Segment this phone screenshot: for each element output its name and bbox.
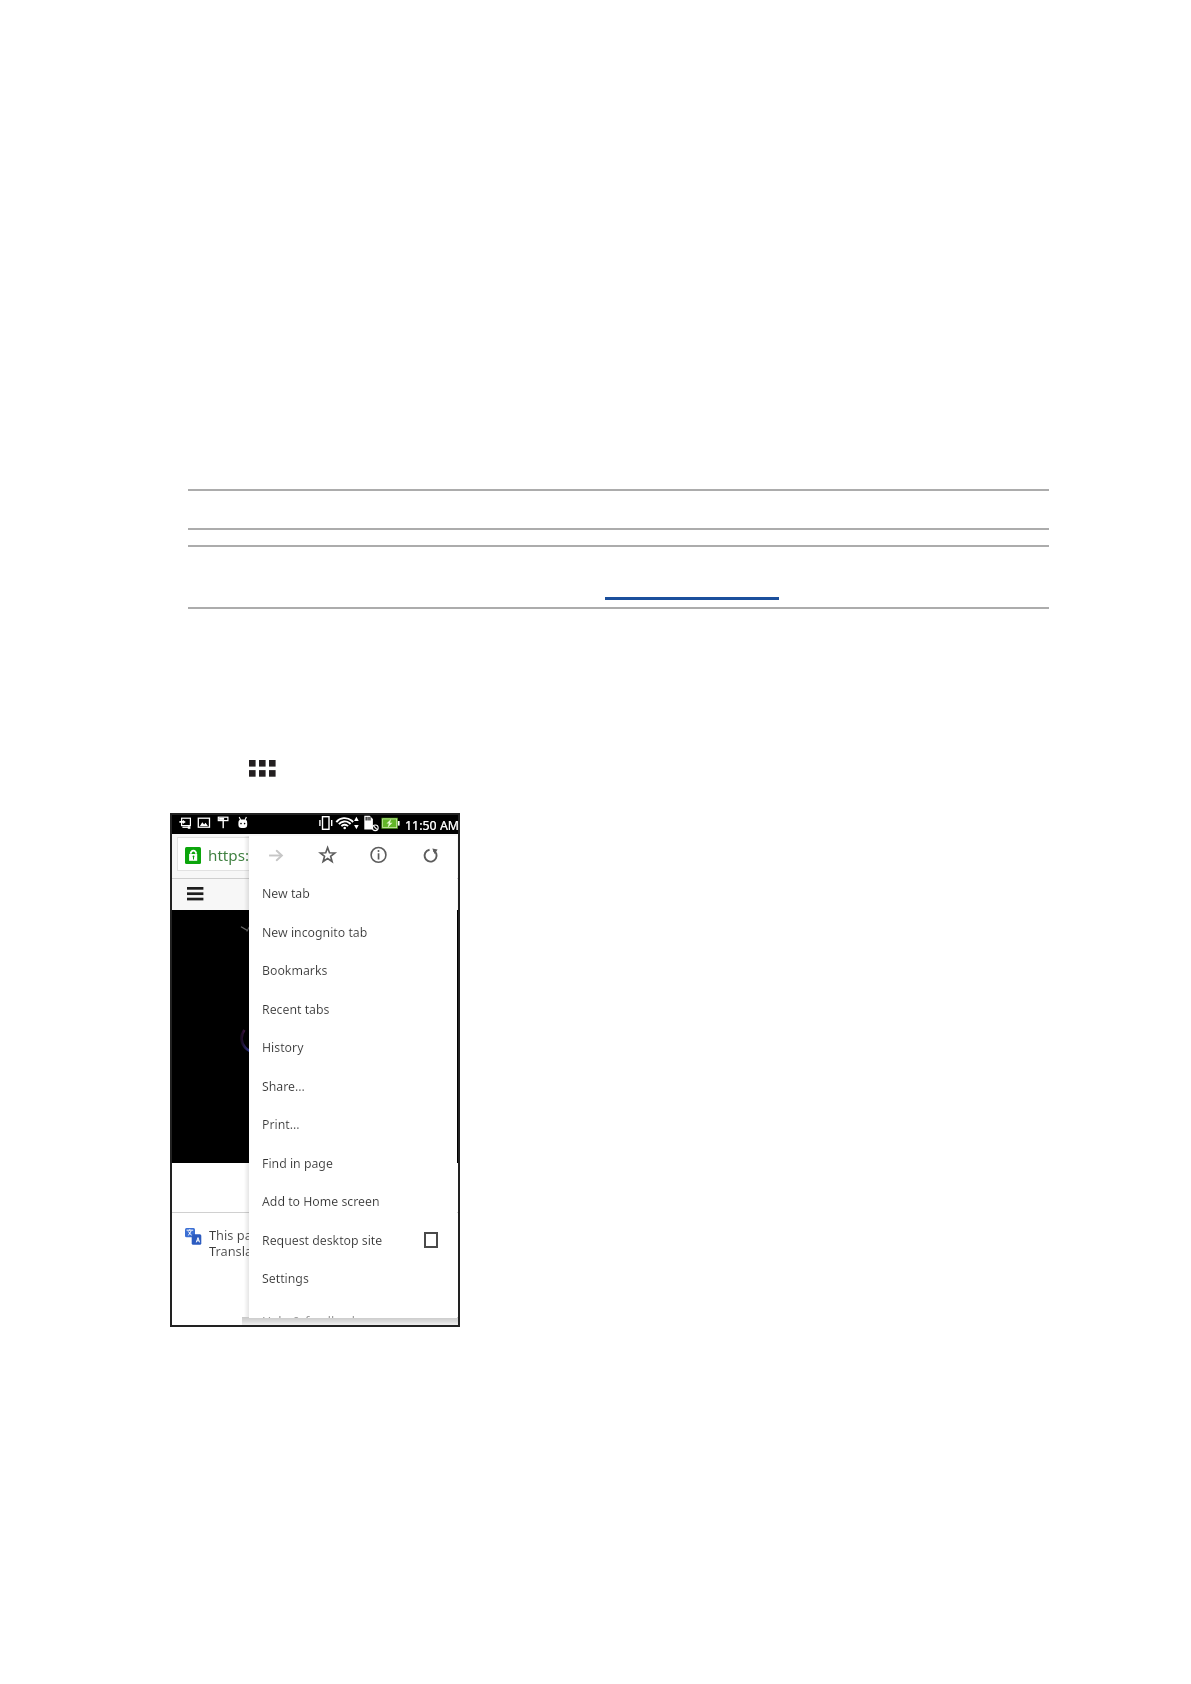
button[interactable]: Add to Home screen: [249, 1182, 457, 1220]
staticText: Help & feedback: [262, 1313, 359, 1318]
staticText: https:/: [208, 845, 255, 866]
button[interactable]: Page info: [356, 836, 401, 875]
button[interactable]: New tab: [249, 874, 457, 912]
staticText: Bookmarks: [262, 962, 328, 979]
button[interactable]: Share...: [249, 1067, 457, 1105]
button[interactable]: App grid: [249, 760, 276, 777]
button[interactable]: Settings: [249, 1259, 457, 1297]
button[interactable]: [177, 837, 442, 871]
button[interactable]: Recent tabs: [249, 990, 457, 1028]
button[interactable]: Bookmarks: [249, 951, 457, 989]
button[interactable]: Request desktop site checkbox: [424, 1232, 438, 1248]
staticText: Settings: [262, 1270, 309, 1287]
staticText: Recent tabs: [262, 1001, 330, 1018]
staticText: Add to Home screen: [262, 1193, 380, 1210]
staticText: History: [262, 1039, 304, 1056]
button[interactable]: Reload: [408, 836, 453, 875]
staticText: Request desktop site: [262, 1232, 383, 1249]
button[interactable]: Print...: [249, 1105, 457, 1143]
staticText: New incognito tab: [262, 924, 368, 941]
button[interactable]: Site menu: [187, 887, 203, 901]
button[interactable]: Secure connection: [185, 847, 201, 864]
button[interactable]: Find in page: [249, 1144, 457, 1182]
staticText: Find in page: [262, 1155, 333, 1172]
button[interactable]: Bookmark this page: [305, 836, 350, 875]
button[interactable]: Forward: [259, 836, 303, 875]
button[interactable]: New incognito tab: [249, 913, 457, 951]
staticText: Print...: [262, 1116, 300, 1133]
staticText: New tab: [262, 885, 310, 902]
staticText: Share...: [262, 1078, 305, 1095]
staticText: Transla: [209, 1242, 253, 1259]
button[interactable]: History: [249, 1028, 457, 1066]
button[interactable]: Translate this page: [170, 1216, 460, 1264]
staticText: 11:50 AM: [405, 817, 460, 834]
button[interactable]: Request desktop site: [249, 1221, 457, 1259]
staticText: This pa: [209, 1226, 252, 1243]
